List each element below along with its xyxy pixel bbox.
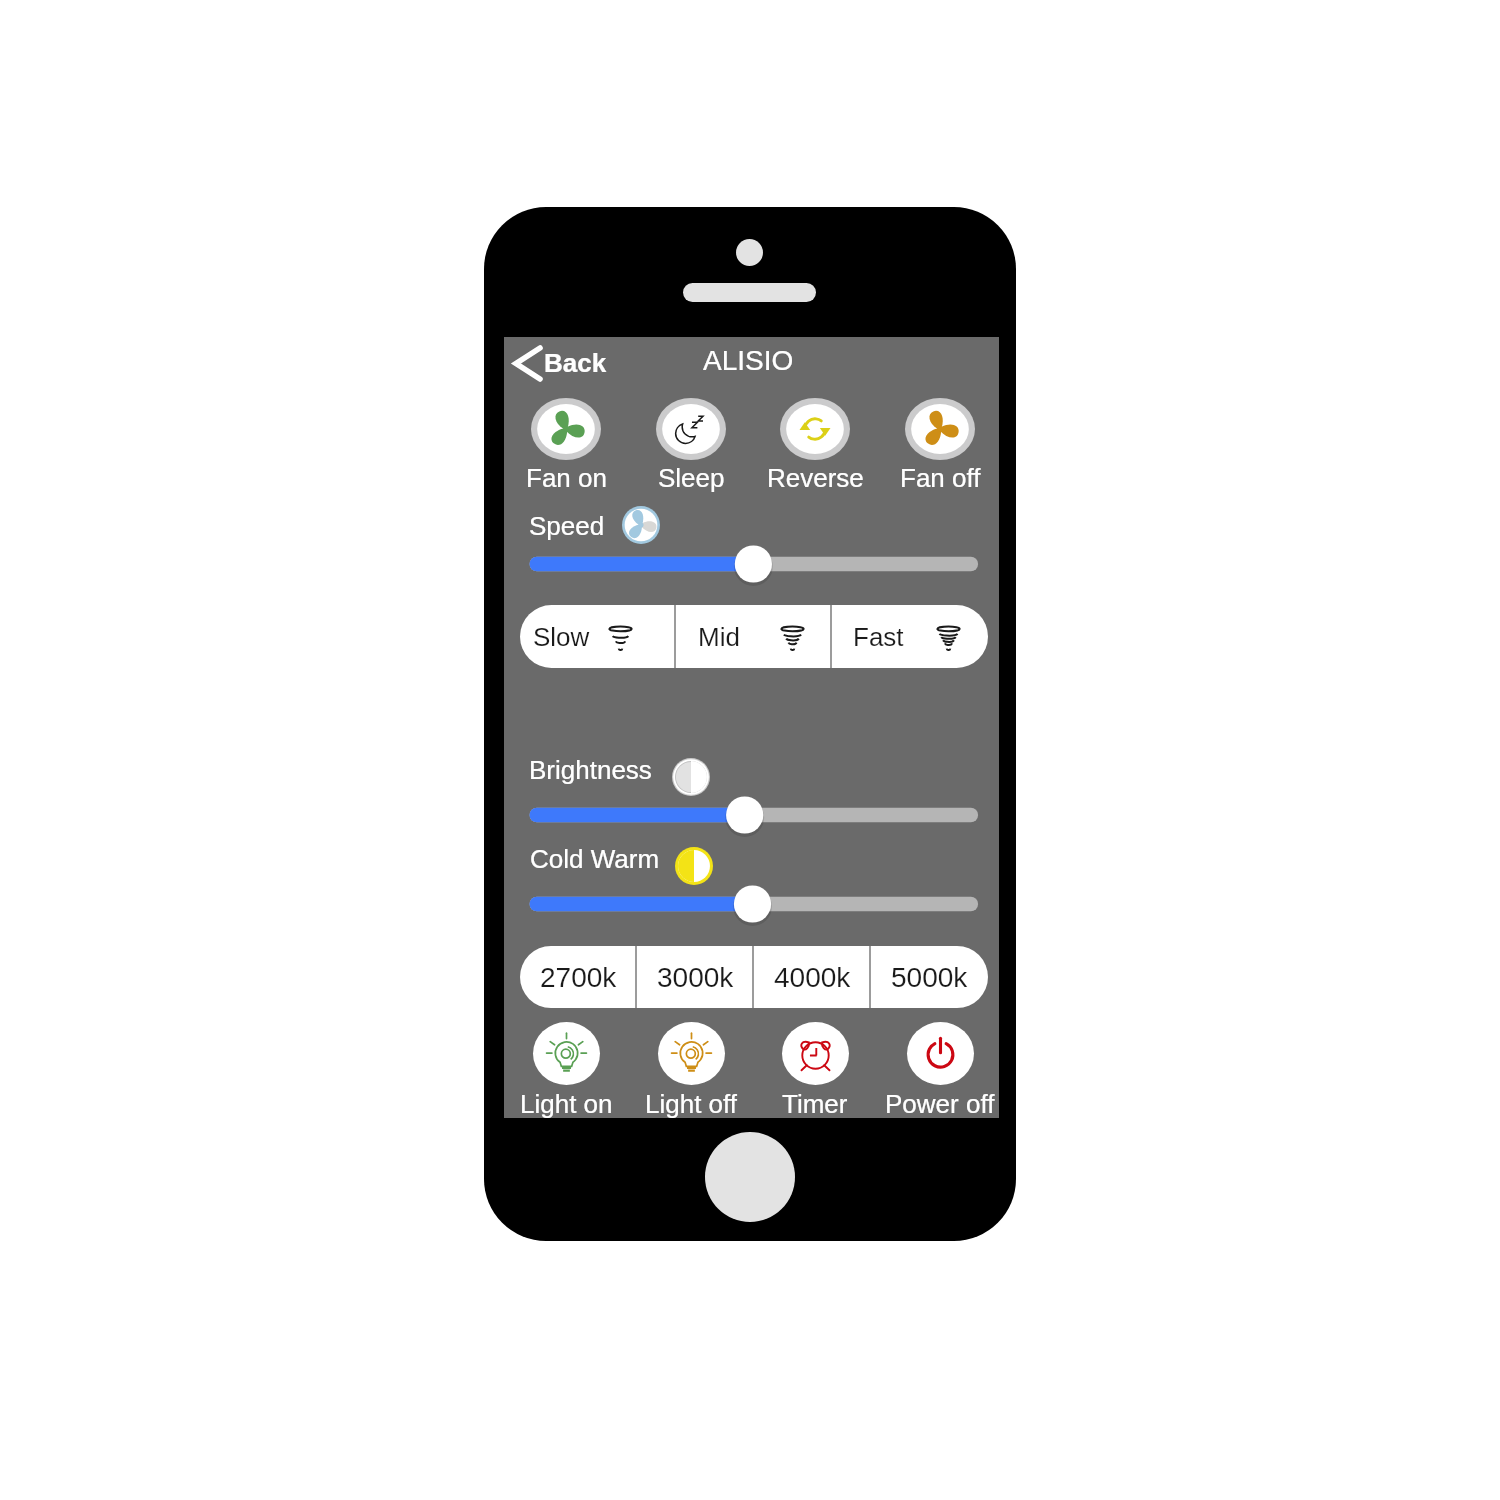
- button[interactable]: [676, 605, 832, 668]
- button[interactable]: Slider: [514, 880, 994, 928]
- button[interactable]: Light off: [631, 1020, 751, 1114]
- staticText: Fan on: [526, 463, 607, 492]
- button[interactable]: Back: [508, 339, 614, 383]
- button[interactable]: Slider: [514, 540, 994, 588]
- staticText: Light on: [520, 1089, 613, 1118]
- staticText: 3000k: [657, 962, 734, 993]
- button[interactable]: Timer: [755, 1020, 875, 1114]
- staticText: Light off: [645, 1089, 738, 1118]
- staticText: Cold Warm: [530, 844, 660, 873]
- staticText: Mid: [698, 622, 740, 651]
- button[interactable]: 4000k: [754, 946, 871, 1008]
- staticText: Fast: [853, 622, 904, 651]
- button[interactable]: Fan on: [509, 394, 623, 494]
- staticText: 2700k: [540, 962, 617, 993]
- button[interactable]: Slider: [514, 791, 994, 839]
- staticText: Sleep: [658, 463, 725, 492]
- staticText: 5000k: [891, 962, 968, 993]
- button[interactable]: Fan off: [883, 394, 997, 494]
- button[interactable]: Sleep: [634, 394, 748, 494]
- staticText: Power off: [885, 1089, 995, 1118]
- staticText: Speed: [529, 511, 605, 540]
- staticText: Back: [544, 348, 607, 377]
- button[interactable]: 2700k: [520, 946, 637, 1008]
- staticText: Timer: [782, 1089, 848, 1118]
- staticText: Fan off: [900, 463, 981, 492]
- staticText: Brightness: [529, 755, 652, 784]
- button[interactable]: 3000k: [637, 946, 754, 1008]
- staticText: ALISIO: [703, 345, 794, 376]
- staticText: Reverse: [767, 463, 864, 492]
- button[interactable]: 5000k: [871, 946, 988, 1008]
- button[interactable]: Light on: [506, 1020, 626, 1114]
- staticText: 4000k: [774, 962, 851, 993]
- button[interactable]: Reverse: [758, 394, 872, 494]
- staticText: Slow: [533, 622, 590, 651]
- button[interactable]: [520, 605, 676, 668]
- button[interactable]: Power off: [880, 1020, 1000, 1114]
- button[interactable]: [832, 605, 988, 668]
